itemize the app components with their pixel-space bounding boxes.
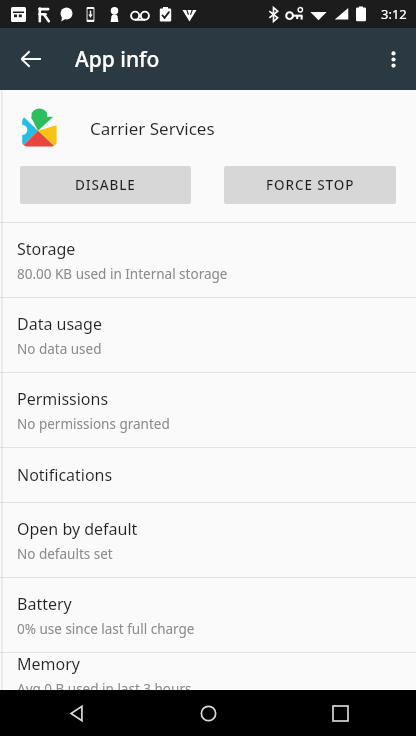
staticText: Carrier Services [90, 117, 215, 140]
button[interactable]: Notifications [0, 448, 416, 502]
button[interactable]: Back [22, 690, 132, 736]
staticText: Battery [17, 593, 72, 615]
staticText: 0% use since last full charge [17, 620, 195, 638]
staticText: DISABLE [75, 176, 136, 194]
staticText: App info [75, 45, 160, 74]
staticText: 80.00 KB used in Internal storage [17, 265, 228, 283]
button[interactable]: Navigate up [9, 37, 53, 81]
staticText: No defaults set [17, 545, 113, 563]
button[interactable]: FORCE STOP [224, 166, 396, 204]
button[interactable]: Battery [0, 578, 416, 652]
button[interactable]: Permissions [0, 373, 416, 447]
staticText: Notifications [17, 464, 113, 486]
staticText: No data used [17, 340, 102, 358]
button[interactable]: Carrier Services [0, 90, 416, 166]
staticText: Avg 0 B used in last 3 hours [17, 680, 192, 690]
button[interactable]: Data usage [0, 298, 416, 372]
button[interactable]: DISABLE [20, 166, 191, 204]
button[interactable]: Storage [0, 223, 416, 297]
staticText: Data usage [17, 313, 102, 335]
button[interactable]: Memory [0, 653, 416, 690]
staticText: 3:12 [381, 5, 407, 23]
staticText: No permissions granted [17, 415, 170, 433]
staticText: FORCE STOP [266, 176, 355, 194]
button[interactable]: Open by default [0, 503, 416, 577]
staticText: Storage [17, 238, 76, 260]
button[interactable]: Recent apps [285, 690, 395, 736]
button[interactable]: Home [153, 690, 263, 736]
staticText: Open by default [17, 518, 138, 540]
button[interactable]: More options [371, 37, 415, 81]
staticText: Permissions [17, 388, 109, 410]
staticText: Memory [17, 653, 80, 675]
